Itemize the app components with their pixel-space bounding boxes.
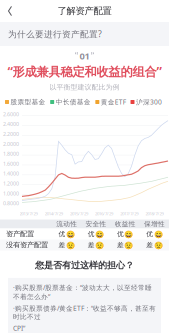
- staticText: 没有资产配置: [6, 240, 48, 250]
- staticText: 保增性: [144, 220, 165, 228]
- staticText: 1.2000: [3, 180, 19, 187]
- staticText: 1.8000: [3, 150, 19, 157]
- staticText: 2013/7/29: [20, 211, 38, 216]
- staticText: 股票型基金: [10, 98, 45, 106]
- staticText: 😟: [95, 241, 104, 249]
- staticText: 2015/7/29: [70, 211, 88, 216]
- button[interactable]: 返回: [0, 0, 20, 22]
- staticText: “形成兼具稳定和收益的组合”: [7, 63, 161, 80]
- staticText: 您是否有过这样的担心？: [35, 259, 134, 271]
- staticText: 2.2000: [3, 130, 19, 138]
- staticText: 2017/7/29: [120, 211, 138, 216]
- staticText: 以平衡型建议配比为例: [49, 83, 119, 91]
- staticText: 😄: [95, 230, 104, 238]
- staticText: 差: [88, 241, 95, 249]
- staticText: 优: [146, 230, 153, 238]
- staticText: 差: [146, 241, 153, 249]
- staticText: 中长债基金: [56, 98, 91, 106]
- staticText: 为什么要进行资产配置?: [8, 28, 102, 40]
- staticText: 资产配置: [6, 229, 34, 239]
- staticText: 2.6000: [3, 110, 19, 118]
- staticText: 1.4000: [3, 170, 19, 177]
- staticText: 😟: [124, 241, 133, 249]
- staticText: 2018/7/29: [145, 211, 163, 216]
- staticText: 1.0000: [3, 190, 19, 197]
- staticText: 沪深300: [136, 97, 162, 106]
- staticText: 安全性: [85, 220, 106, 228]
- staticText: 2014/7/29: [45, 211, 63, 216]
- staticText: 了解资产配置: [57, 5, 111, 17]
- staticText: 1.6000: [3, 160, 19, 167]
- staticText: 😟: [154, 241, 163, 249]
- staticText: 😄: [66, 230, 75, 238]
- staticText: 流动性: [56, 220, 77, 228]
- staticText: 2.4000: [3, 120, 19, 128]
- staticText: 2.0000: [3, 140, 19, 147]
- staticText: 01: [79, 50, 89, 62]
- staticText: ·购买股票/股票基金：“波动太大，以至经常睡不着怎么办”: [13, 283, 152, 301]
- staticText: 😟: [66, 241, 75, 249]
- staticText: 优: [58, 230, 65, 238]
- staticText: 2016/7/29: [95, 211, 113, 216]
- staticText: 0.8000: [3, 200, 19, 207]
- staticText: 优: [88, 230, 95, 238]
- staticText: CPI”: [13, 324, 25, 333]
- staticText: 优: [117, 230, 124, 238]
- staticText: 差: [58, 241, 65, 249]
- staticText: 黄金ETF: [101, 97, 126, 106]
- staticText: 差: [117, 241, 124, 249]
- staticText: 收益性: [115, 220, 136, 228]
- staticText: 😄: [124, 230, 133, 238]
- staticText: 😄: [154, 230, 163, 238]
- staticText: ·购买股票债券/黄金ETF：“收益不够高，甚至有时比不过: [13, 304, 156, 321]
